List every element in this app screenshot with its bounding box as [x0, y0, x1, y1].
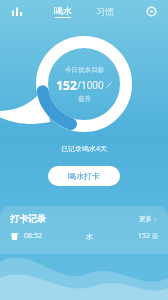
button[interactable]: 更多 — [139, 215, 158, 223]
button[interactable]: 喝水打卡 — [48, 166, 120, 186]
staticText: 喝水打卡 — [68, 171, 100, 181]
staticText: 08:52 — [24, 231, 42, 241]
staticText: 喝水 — [54, 5, 72, 16]
staticText: 已记录喝水4天 — [0, 144, 168, 154]
staticText: 今日饮水目标 — [65, 66, 104, 74]
button[interactable]: 习惯 — [92, 4, 118, 19]
other: Edit goal — [106, 82, 112, 88]
staticText: 水 — [86, 232, 93, 241]
button[interactable]: 喝水 — [50, 5, 76, 18]
staticText: 更多 — [139, 215, 152, 223]
staticText: 毫升 — [78, 95, 91, 103]
button[interactable]: 08:52 — [10, 231, 158, 241]
staticText: 习惯 — [96, 6, 114, 17]
button[interactable]: Settings — [142, 2, 160, 20]
staticText: /1000 — [77, 78, 104, 92]
button[interactable]: 152 — [56, 77, 112, 93]
staticText: 打卡记录 — [10, 213, 46, 224]
staticText: 毫 — [152, 232, 158, 240]
button[interactable]: Statistics — [8, 2, 26, 20]
staticText: 152 — [137, 231, 150, 241]
staticText: 152 — [56, 77, 77, 93]
